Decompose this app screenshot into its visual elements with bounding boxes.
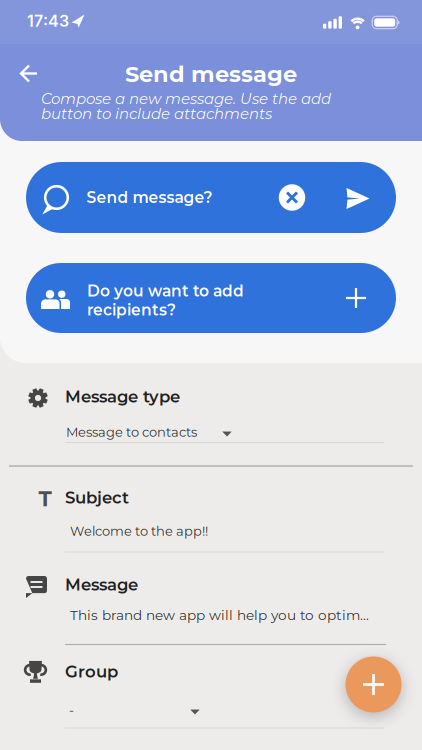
staticText: Message to contacts — [66, 424, 197, 440]
button[interactable]: Back — [11, 55, 47, 91]
button[interactable]: Clear — [279, 184, 305, 211]
staticText: recipients? — [87, 301, 176, 319]
button[interactable]: Message type selector — [65, 416, 385, 448]
staticText: Subject — [65, 487, 129, 507]
button[interactable]: Add attachment — [345, 656, 401, 712]
staticText: 17:43 — [27, 11, 69, 31]
staticText: Welcome to the app!! — [70, 523, 208, 539]
button[interactable]: Send — [338, 180, 377, 217]
button[interactable]: Add recipients — [26, 263, 396, 333]
staticText: Message — [65, 574, 138, 594]
staticText: Do you want to add — [87, 282, 244, 300]
button[interactable]: Group selector — [65, 694, 385, 726]
staticText: Send message? — [86, 188, 212, 207]
button[interactable]: Send message — [26, 162, 396, 233]
staticText: T — [38, 485, 51, 512]
staticText: Message type — [65, 386, 180, 406]
staticText: Send message — [125, 60, 297, 88]
staticText: This brand new app will help you to opti… — [70, 607, 369, 623]
staticText: Compose a new message. Use the add — [41, 89, 331, 108]
button[interactable]: Add — [338, 280, 374, 316]
staticText: - — [69, 702, 74, 718]
staticText: Group — [65, 661, 118, 681]
staticText: button to include attachments — [41, 104, 272, 123]
